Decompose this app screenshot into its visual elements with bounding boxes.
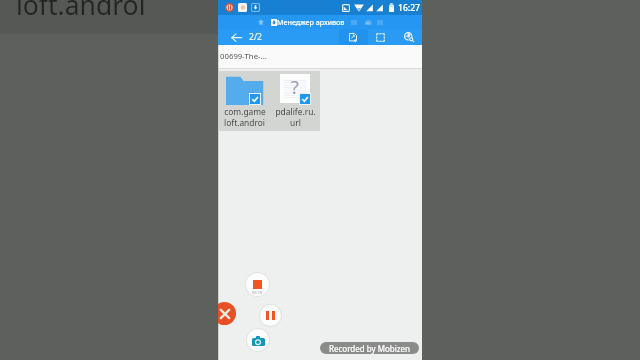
staticText: 16:27 xyxy=(398,2,421,14)
staticText: Recorded by Mobizen xyxy=(329,343,410,354)
staticText: ? xyxy=(291,75,299,100)
staticText: loft.androi xyxy=(16,0,146,21)
button[interactable]: Stop recording xyxy=(246,273,269,296)
staticText: 05:16 xyxy=(252,290,263,295)
button[interactable]: Close xyxy=(213,302,236,325)
button[interactable]: com.game xyxy=(219,71,270,128)
button[interactable]: Extract xyxy=(339,29,368,45)
staticText: pdalife.ru. xyxy=(275,106,316,117)
staticText: url xyxy=(290,117,301,128)
staticText: 2/2 xyxy=(249,31,263,43)
button[interactable]: Back xyxy=(226,29,246,45)
button[interactable]: Take screenshot xyxy=(247,329,269,351)
button[interactable]: Search online xyxy=(395,29,420,45)
staticText: loft.androi xyxy=(224,117,265,128)
button[interactable]: Pause recording xyxy=(260,305,281,326)
staticText: com.game xyxy=(224,106,266,117)
button[interactable]: ? xyxy=(270,71,320,128)
staticText: 00699-The-... xyxy=(220,51,267,62)
button[interactable]: Select all xyxy=(367,29,392,45)
staticText: Менеджер архивов xyxy=(277,17,345,27)
